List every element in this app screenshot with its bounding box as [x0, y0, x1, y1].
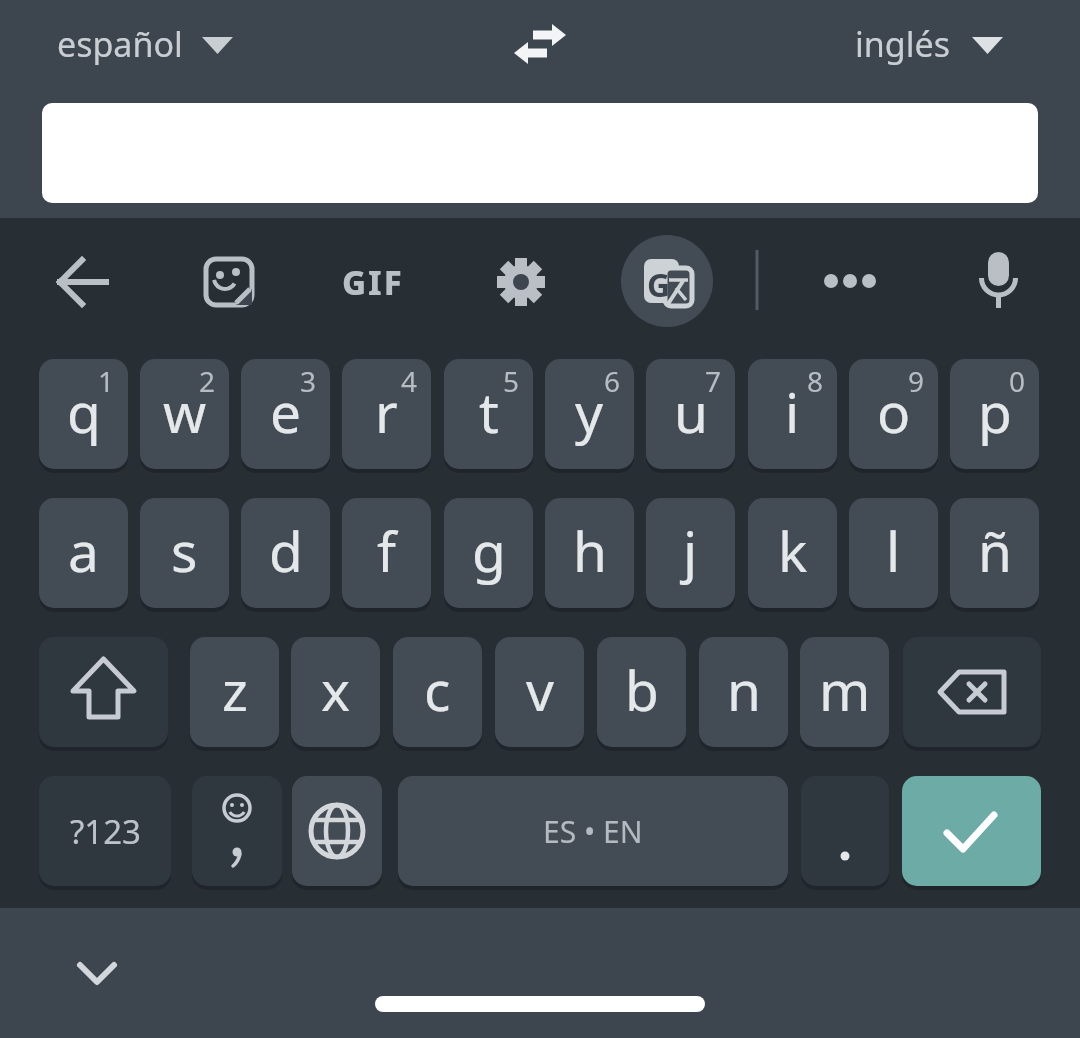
button[interactable]: inglés [838, 12, 1038, 76]
staticText: l [886, 513, 901, 588]
button[interactable] [42, 103, 1038, 203]
button[interactable] [807, 239, 893, 325]
staticText: 7 [705, 362, 722, 400]
button[interactable]: j [646, 498, 735, 608]
button[interactable]: u [646, 359, 735, 469]
button[interactable]: c [393, 637, 482, 747]
staticText: a [68, 513, 99, 588]
staticText: GIF [342, 260, 404, 305]
button[interactable] [39, 637, 168, 747]
staticText: 0 [1009, 362, 1026, 400]
button[interactable] [292, 776, 382, 886]
staticText: 8 [807, 362, 824, 400]
staticText: h [573, 513, 607, 588]
button[interactable]: x [291, 637, 380, 747]
button[interactable]: d [241, 498, 330, 608]
button[interactable]: ?123 [39, 776, 171, 886]
button[interactable]: p [950, 359, 1039, 469]
button[interactable] [902, 776, 1041, 886]
staticText: m [819, 652, 871, 727]
staticText: ñ [978, 513, 1012, 588]
button[interactable]: s [140, 498, 229, 608]
button[interactable] [955, 239, 1041, 325]
button[interactable]: v [495, 637, 584, 747]
button[interactable]: g [444, 498, 533, 608]
button[interactable]: f [342, 498, 431, 608]
staticText: k [778, 513, 808, 588]
staticText: 9 [908, 362, 925, 400]
button[interactable]: r [342, 359, 431, 469]
staticText: 1 [98, 362, 115, 400]
staticText: q [67, 374, 101, 449]
button[interactable] [500, 8, 580, 80]
staticText: n [727, 652, 761, 727]
staticText: 3 [300, 362, 317, 400]
button[interactable] [186, 239, 272, 325]
button[interactable] [801, 776, 889, 886]
button[interactable]: i [748, 359, 837, 469]
staticText: y [575, 374, 604, 449]
button[interactable]: q [39, 359, 128, 469]
staticText: s [171, 513, 198, 588]
button[interactable]: ES • EN [398, 776, 788, 886]
button[interactable]: G [621, 235, 713, 327]
staticText: f [377, 513, 396, 588]
staticText: r [375, 374, 398, 449]
button[interactable] [57, 932, 137, 1012]
staticText: 4 [401, 362, 418, 400]
button[interactable] [40, 239, 126, 325]
staticText: 2 [199, 362, 216, 400]
staticText: español [57, 21, 183, 67]
button[interactable] [192, 776, 282, 886]
button[interactable]: b [597, 637, 686, 747]
button[interactable]: k [748, 498, 837, 608]
staticText: inglés [855, 21, 950, 67]
button[interactable]: t [444, 359, 533, 469]
staticText: t [479, 374, 499, 449]
staticText: c [424, 652, 451, 727]
button[interactable] [478, 239, 564, 325]
staticText: ES • EN [543, 811, 643, 852]
staticText: g [472, 513, 506, 588]
staticText: u [674, 374, 708, 449]
button[interactable]: español [40, 12, 250, 76]
staticText: z [222, 652, 248, 727]
button[interactable]: z [190, 637, 279, 747]
button[interactable]: w [140, 359, 229, 469]
button[interactable]: h [545, 498, 634, 608]
button[interactable]: n [699, 637, 788, 747]
button[interactable]: m [800, 637, 889, 747]
staticText: i [785, 374, 800, 449]
staticText: p [978, 374, 1012, 449]
button[interactable]: y [545, 359, 634, 469]
staticText: 5 [503, 362, 520, 400]
button[interactable]: l [849, 498, 938, 608]
staticText: w [163, 374, 207, 449]
button[interactable]: e [241, 359, 330, 469]
staticText: o [877, 374, 911, 449]
button[interactable] [903, 637, 1041, 747]
button[interactable]: GIF [330, 239, 416, 325]
staticText: j [683, 513, 698, 588]
staticText: G [647, 263, 671, 307]
staticText: x [321, 652, 351, 727]
staticText: d [269, 513, 303, 588]
staticText: 6 [604, 362, 621, 400]
button[interactable]: o [849, 359, 938, 469]
staticText: b [625, 652, 659, 727]
button[interactable]: a [39, 498, 128, 608]
button[interactable]: ñ [950, 498, 1039, 608]
staticText: v [526, 652, 554, 727]
staticText: e [270, 374, 302, 449]
staticText: ?123 [70, 809, 141, 854]
